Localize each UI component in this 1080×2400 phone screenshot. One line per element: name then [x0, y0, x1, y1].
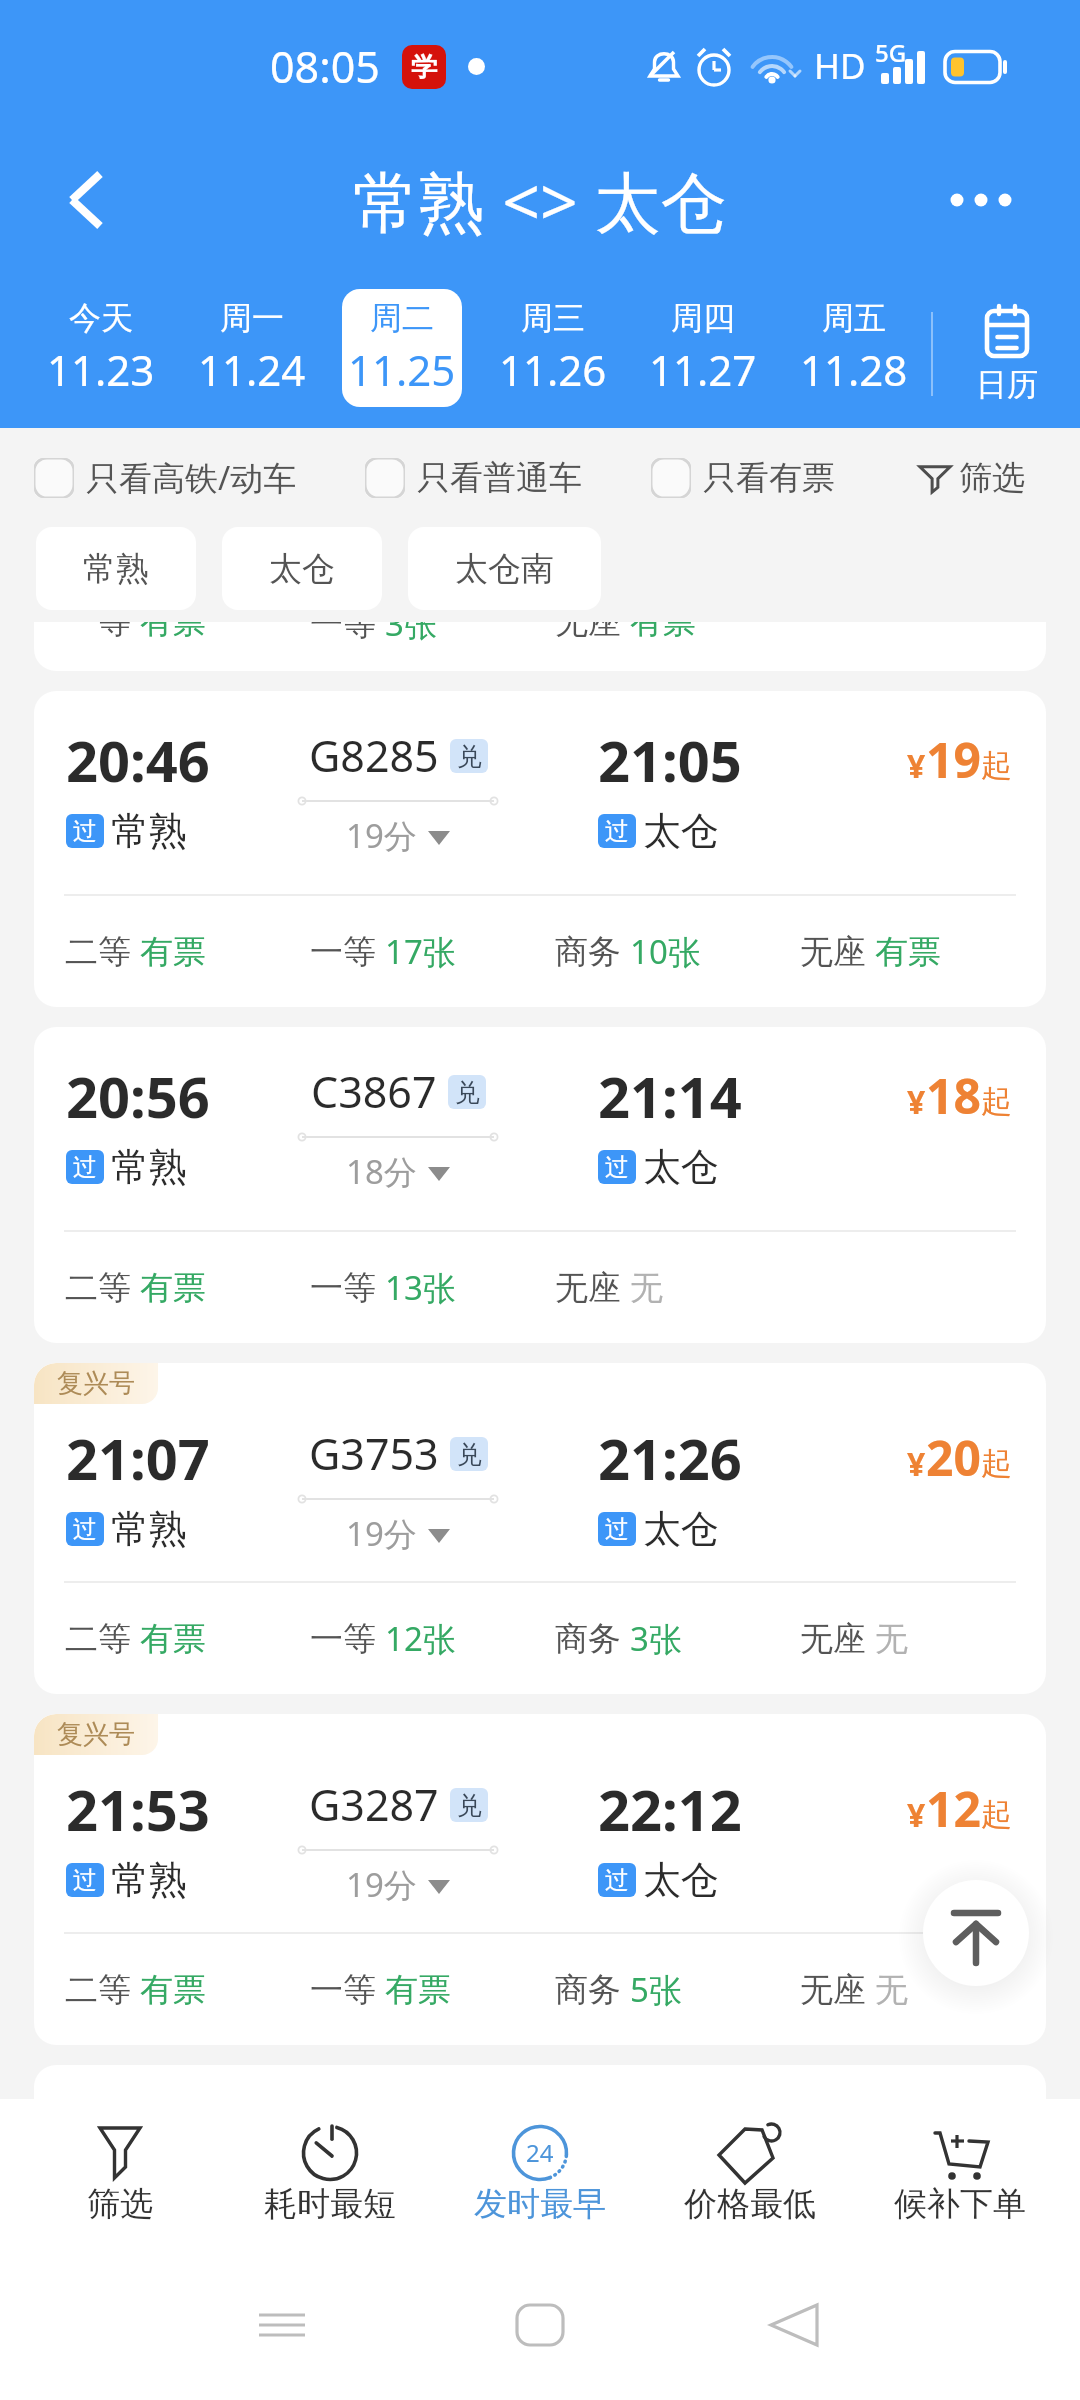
- button[interactable]: 周五: [794, 289, 914, 407]
- staticText: 价格最低: [684, 2183, 816, 2225]
- staticText: 有票: [140, 931, 206, 973]
- staticText: 周三: [521, 298, 585, 338]
- button[interactable]: 筛选: [15, 2099, 225, 2250]
- staticText: 候补下单: [894, 2183, 1026, 2225]
- staticText: 19: [926, 727, 981, 792]
- button[interactable]: Recent apps: [252, 2295, 312, 2355]
- staticText: 无座: [555, 622, 621, 643]
- staticText: 常熟: [111, 1505, 187, 1553]
- staticText: 10张: [630, 929, 701, 974]
- button[interactable]: 复兴号: [34, 1714, 1046, 2045]
- staticText: 20: [926, 1425, 981, 1490]
- button[interactable]: Back: [764, 2295, 824, 2355]
- staticText: C3867: [311, 1062, 437, 1121]
- staticText: 有票: [140, 1618, 206, 1660]
- button[interactable]: Home: [510, 2295, 570, 2355]
- button[interactable]: 20:56: [34, 1027, 1046, 1343]
- staticText: ¥: [907, 744, 926, 788]
- staticText: 有票: [140, 1267, 206, 1309]
- staticText: ¥: [907, 1793, 926, 1837]
- staticText: 一等: [310, 1969, 376, 2011]
- button[interactable]: 周四: [643, 289, 763, 407]
- staticText: ¥: [907, 1442, 926, 1486]
- staticText: 今天: [69, 298, 133, 338]
- button[interactable]: 20:46: [34, 691, 1046, 1007]
- staticText: 发时最早: [474, 2183, 606, 2225]
- staticText: 有票: [630, 622, 696, 643]
- button[interactable]: 太仓南: [408, 527, 601, 610]
- staticText: 过: [73, 1152, 97, 1182]
- staticText: G3753: [309, 1424, 439, 1483]
- staticText: 一等: [310, 1618, 376, 1660]
- button[interactable]: 只看有票: [651, 457, 835, 499]
- button[interactable]: 耗时最短: [225, 2099, 435, 2250]
- button[interactable]: 筛选: [917, 457, 1025, 499]
- staticText: 太仓: [643, 1856, 719, 1904]
- staticText: 21:26: [598, 1420, 742, 1496]
- staticText: 常熟: [111, 807, 187, 855]
- staticText: 有票: [875, 931, 941, 973]
- button[interactable]: 候补下单: [855, 2099, 1065, 2250]
- button[interactable]: 常熟: [36, 527, 196, 610]
- staticText: 过: [605, 816, 629, 846]
- staticText: 无: [875, 1969, 908, 2011]
- staticText: 5张: [630, 1967, 682, 2012]
- staticText: 11.23: [47, 341, 155, 398]
- staticText: 太仓: [643, 807, 719, 855]
- staticText: 有票: [140, 622, 206, 643]
- staticText: 商务: [555, 1969, 621, 2011]
- button[interactable]: 周三: [493, 289, 613, 407]
- staticText: 起: [981, 746, 1012, 785]
- staticText: 19分: [346, 1862, 417, 1907]
- staticText: 筛选: [959, 457, 1025, 499]
- staticText: HD: [814, 42, 866, 90]
- button[interactable]: 日历: [942, 280, 1072, 428]
- button[interactable]: 周二: [342, 289, 462, 407]
- button[interactable]: 太仓: [222, 527, 382, 610]
- staticText: 过: [605, 1865, 629, 1895]
- staticText: 商务: [555, 931, 621, 973]
- staticText: 18分: [346, 1149, 417, 1194]
- button[interactable]: 只看高铁/动车: [34, 455, 297, 500]
- staticText: G8285: [309, 726, 439, 785]
- staticText: 有票: [385, 1969, 451, 2011]
- staticText: 太仓: [269, 548, 335, 590]
- staticText: 13张: [385, 1265, 456, 1310]
- staticText: 复兴号: [57, 1367, 135, 1400]
- staticText: 21:14: [598, 1058, 742, 1134]
- staticText: 无座: [800, 1618, 866, 1660]
- staticText: 一等: [310, 931, 376, 973]
- staticText: 兑: [457, 1439, 482, 1470]
- staticText: 一等: [310, 622, 376, 645]
- staticText: 太仓: [643, 1505, 719, 1553]
- staticText: 20:56: [66, 1058, 210, 1134]
- staticText: 起: [981, 1082, 1012, 1121]
- button[interactable]: 价格最低: [645, 2099, 855, 2250]
- button[interactable]: Scroll to top: [923, 1880, 1029, 1986]
- button[interactable]: More options: [926, 145, 1036, 255]
- button[interactable]: 今天: [41, 289, 161, 407]
- staticText: 11.27: [649, 341, 757, 398]
- staticText: 21:07: [66, 1420, 210, 1496]
- staticText: 19分: [346, 1511, 417, 1556]
- staticText: 起: [981, 1444, 1012, 1483]
- staticText: 兑: [455, 1077, 480, 1108]
- button[interactable]: Back: [27, 145, 137, 255]
- staticText: 复兴号: [57, 1718, 135, 1751]
- staticText: 3张: [630, 1616, 682, 1661]
- staticText: 周四: [671, 298, 735, 338]
- button[interactable]: 24: [435, 2099, 645, 2250]
- button[interactable]: 只看普通车: [365, 457, 582, 499]
- staticText: 过: [605, 1514, 629, 1544]
- button[interactable]: 复兴号: [34, 1363, 1046, 1694]
- staticText: 18: [926, 1063, 981, 1128]
- staticText: 常熟 <> 太仓: [353, 155, 727, 245]
- staticText: 11.26: [499, 341, 607, 398]
- staticText: 兑: [457, 1790, 482, 1821]
- staticText: 12张: [385, 1616, 456, 1661]
- staticText: 周五: [822, 298, 886, 338]
- staticText: 24: [526, 2136, 554, 2169]
- button[interactable]: 周一: [192, 289, 312, 407]
- staticText: 一等: [65, 622, 131, 643]
- staticText: 08:05: [270, 37, 380, 96]
